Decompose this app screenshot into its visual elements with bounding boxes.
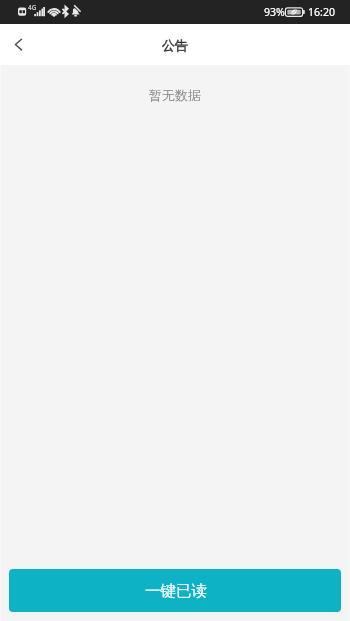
staticText: 一键已读 [145, 581, 207, 601]
staticText: 16:20 [308, 5, 336, 19]
button[interactable]: Back [0, 24, 42, 65]
staticText: 暂无数据 [149, 87, 201, 103]
staticText: 4G [28, 3, 37, 12]
button[interactable]: 一键已读 [9, 569, 341, 612]
staticText: 公告 [162, 37, 188, 53]
staticText: 公告 [162, 37, 188, 53]
staticText: 93% [264, 5, 285, 19]
